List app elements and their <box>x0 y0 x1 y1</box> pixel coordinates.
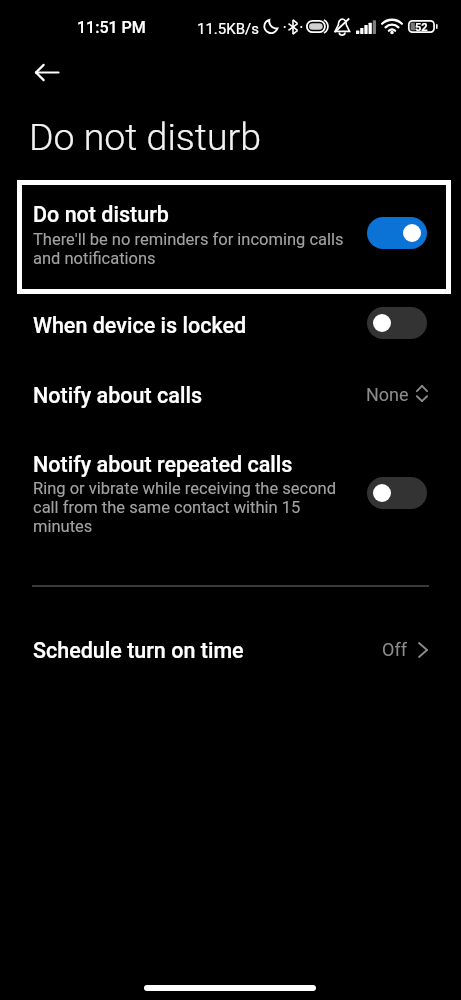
staticText: None <box>366 384 409 405</box>
button[interactable]: When device is locked toggle <box>367 307 427 339</box>
button[interactable]: Do not disturb <box>17 180 451 294</box>
staticText: 11.5KB/s <box>197 20 259 38</box>
button[interactable]: Notify about repeated calls <box>0 440 461 545</box>
staticText: Off <box>382 639 407 660</box>
staticText: There'll be no reminders for incoming ca… <box>33 230 344 268</box>
button[interactable]: Notify about repeated calls toggle <box>367 477 427 509</box>
button[interactable]: Notify about calls <box>0 371 461 421</box>
staticText: Notify about repeated calls <box>33 452 293 477</box>
button[interactable]: Back <box>22 48 71 96</box>
staticText: When device is locked <box>33 313 247 338</box>
staticText: Do not disturb <box>33 202 169 227</box>
staticText: Notify about calls <box>33 383 203 408</box>
staticText: Schedule turn on time <box>33 638 244 663</box>
button[interactable]: When device is locked <box>0 301 461 351</box>
button[interactable]: Schedule turn on time <box>0 626 461 676</box>
button[interactable]: Do not disturb toggle <box>367 217 427 249</box>
staticText: Do not disturb <box>29 115 261 159</box>
staticText: Ring or vibrate while receiving the seco… <box>33 479 353 536</box>
staticText: 52 <box>415 21 428 34</box>
staticText: 11:51 PM <box>77 18 146 37</box>
